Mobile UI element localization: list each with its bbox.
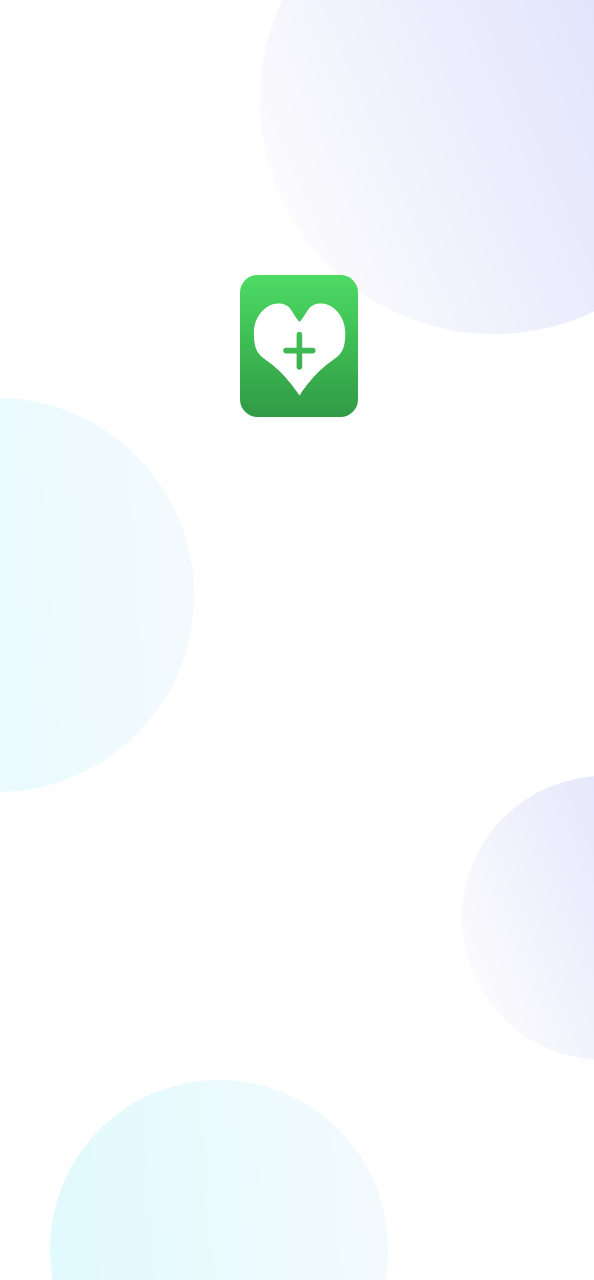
button[interactable]: Heart Plus app logo [240,275,358,417]
